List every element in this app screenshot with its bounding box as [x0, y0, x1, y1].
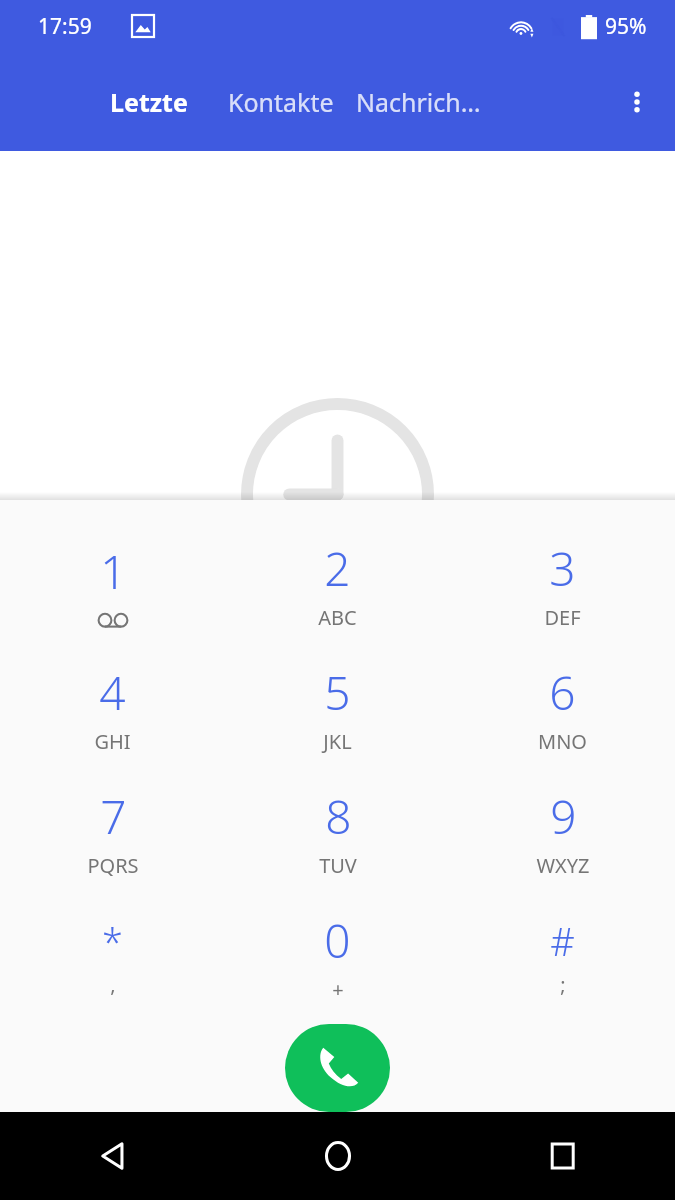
staticText: Nachrich… — [356, 85, 481, 119]
staticText: 95% — [605, 12, 647, 41]
button[interactable]: 7 — [0, 770, 225, 894]
staticText: 9 — [550, 785, 577, 848]
button[interactable]: Back — [0, 1112, 225, 1200]
button[interactable]: Kontakte — [228, 85, 334, 119]
button[interactable]: # — [450, 894, 675, 1018]
staticText: 17:59 — [38, 12, 92, 41]
staticText: # — [550, 915, 575, 967]
staticText: 1 — [100, 540, 127, 603]
button[interactable]: Call — [285, 1024, 390, 1112]
button[interactable]: 1 — [0, 522, 225, 646]
button[interactable]: * — [0, 894, 225, 1018]
button[interactable]: 6 — [450, 646, 675, 770]
staticText: + — [332, 976, 344, 1003]
staticText: PQRS — [87, 852, 139, 879]
staticText: 0 — [324, 909, 351, 972]
button[interactable]: 8 — [225, 770, 450, 894]
button[interactable]: Letzte — [110, 85, 188, 119]
staticText: 2 — [324, 537, 351, 600]
staticText: 6 — [549, 661, 576, 724]
staticText: ABC — [318, 604, 357, 631]
button[interactable]: Nachrich… — [356, 85, 481, 119]
staticText: MNO — [538, 728, 587, 755]
staticText: 7 — [100, 785, 127, 848]
button[interactable]: Recent apps — [450, 1112, 675, 1200]
button[interactable]: More options — [611, 76, 663, 128]
button[interactable]: 9 — [450, 770, 675, 894]
staticText: 4 — [99, 661, 126, 724]
button[interactable]: 2 — [225, 522, 450, 646]
button[interactable]: 0 — [225, 894, 450, 1018]
staticText: 8 — [325, 785, 352, 848]
button[interactable]: 3 — [450, 522, 675, 646]
button[interactable]: 4 — [0, 646, 225, 770]
staticText: * — [102, 915, 123, 967]
button[interactable]: 5 — [225, 646, 450, 770]
staticText: JKL — [323, 728, 352, 755]
staticText: 5 — [324, 661, 351, 724]
staticText: TUV — [319, 852, 357, 879]
staticText: ; — [560, 971, 566, 998]
staticText: WXYZ — [536, 852, 590, 879]
staticText: 3 — [549, 537, 576, 600]
staticText: , — [110, 971, 116, 998]
staticText: Letzte — [110, 85, 188, 119]
staticText: Kontakte — [228, 85, 334, 119]
button[interactable]: Home — [225, 1112, 450, 1200]
staticText: GHI — [94, 728, 131, 755]
staticText: DEF — [544, 604, 581, 631]
